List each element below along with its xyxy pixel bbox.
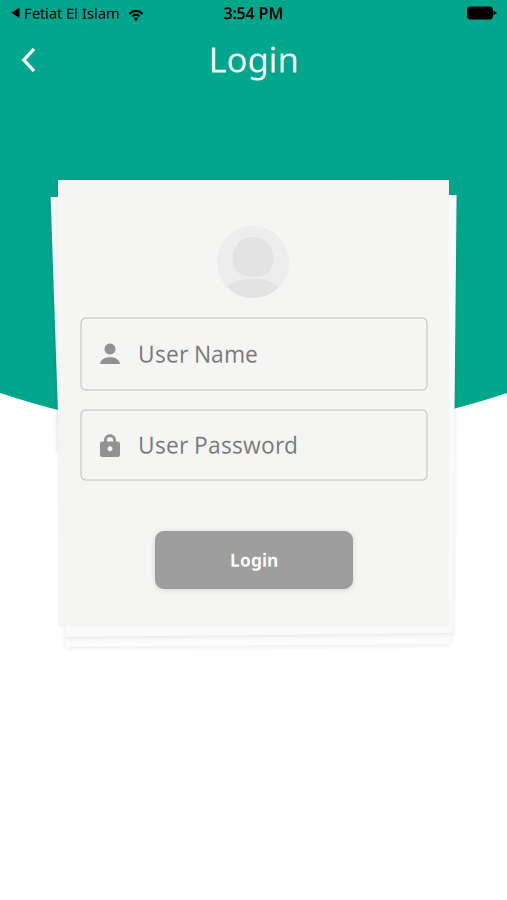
- button[interactable]: User Name: [81, 318, 427, 390]
- staticText: Login: [230, 548, 278, 571]
- staticText: 3:54 PM: [223, 2, 283, 24]
- staticText: User Password: [138, 430, 298, 460]
- staticText: Fetiat El Islam: [24, 3, 120, 23]
- button[interactable]: Back: [0, 35, 56, 85]
- staticText: User Name: [138, 339, 258, 369]
- button[interactable]: User Password: [81, 410, 427, 480]
- staticText: Login: [208, 36, 298, 82]
- button[interactable]: Login: [155, 531, 353, 589]
